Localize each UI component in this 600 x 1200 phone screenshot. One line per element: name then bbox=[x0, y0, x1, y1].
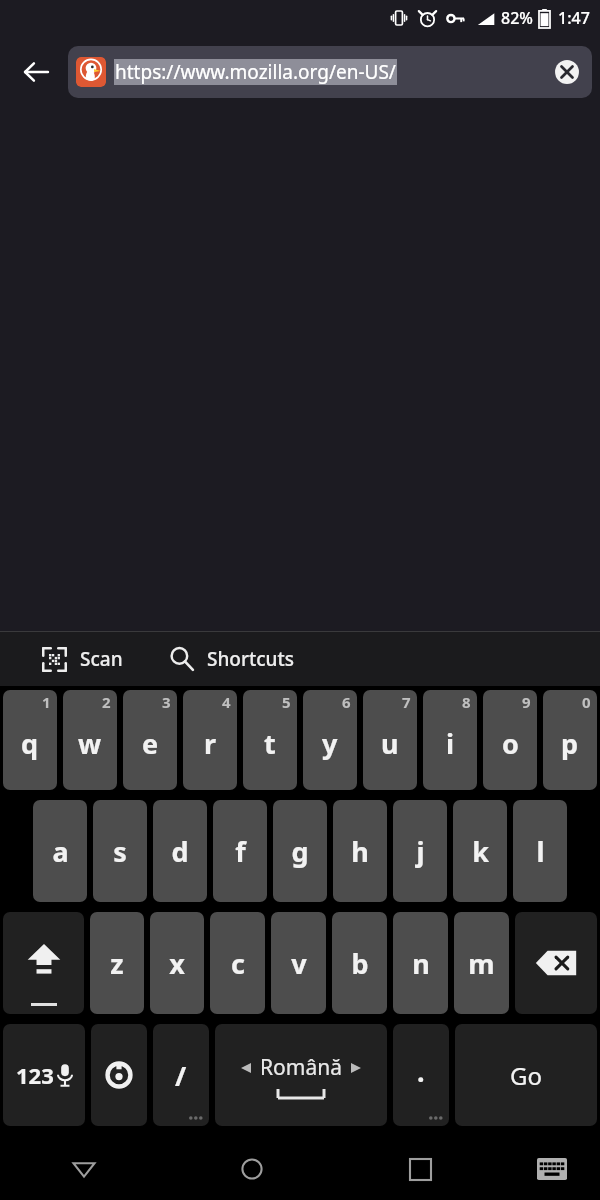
button[interactable]: 3 bbox=[123, 690, 177, 790]
button[interactable]: Back bbox=[8, 44, 64, 100]
staticText: Shortcuts bbox=[207, 646, 295, 672]
button[interactable]: 5 bbox=[243, 690, 297, 790]
button[interactable]: k bbox=[453, 800, 507, 902]
button[interactable]: j bbox=[393, 800, 447, 902]
staticText: n bbox=[412, 945, 430, 982]
staticText: f bbox=[235, 833, 246, 870]
staticText: 8 bbox=[462, 692, 471, 712]
staticText: . bbox=[417, 1053, 425, 1090]
button[interactable]: Shortcuts bbox=[161, 632, 303, 686]
button[interactable]: 1 bbox=[3, 690, 57, 790]
button[interactable]: Home bbox=[168, 1138, 336, 1200]
staticText: 2 bbox=[102, 692, 111, 712]
staticText: v bbox=[291, 945, 307, 982]
button[interactable]: a bbox=[33, 800, 87, 902]
button[interactable]: v bbox=[271, 912, 326, 1014]
button[interactable]: c bbox=[210, 912, 265, 1014]
staticText: h bbox=[351, 833, 369, 870]
staticText: 0 bbox=[582, 692, 591, 712]
staticText: a bbox=[52, 833, 69, 870]
staticText: b bbox=[351, 945, 369, 982]
staticText: w bbox=[78, 725, 102, 762]
button[interactable]: d bbox=[153, 800, 207, 902]
staticText: 3 bbox=[162, 692, 171, 712]
staticText: c bbox=[231, 945, 245, 982]
button[interactable]: 0 bbox=[543, 690, 597, 790]
button[interactable]: n bbox=[393, 912, 448, 1014]
staticText: d bbox=[171, 833, 189, 870]
button[interactable]: Shift bbox=[3, 912, 84, 1014]
staticText: t bbox=[264, 725, 276, 762]
staticText: y bbox=[322, 725, 338, 762]
button[interactable]: Space, Română bbox=[215, 1024, 387, 1126]
button[interactable]: / bbox=[153, 1024, 209, 1126]
button[interactable]: https://www.mozilla.org/en-US/ bbox=[68, 46, 592, 98]
button[interactable]: 9 bbox=[483, 690, 537, 790]
button[interactable]: Numbers and voice input bbox=[3, 1024, 85, 1126]
staticText: 5 bbox=[282, 692, 291, 712]
button[interactable]: Back bbox=[0, 1138, 168, 1200]
button[interactable]: 6 bbox=[303, 690, 357, 790]
button[interactable]: l bbox=[513, 800, 567, 902]
staticText: / bbox=[175, 1057, 187, 1094]
button[interactable]: Scan bbox=[0, 632, 135, 686]
button[interactable]: m bbox=[454, 912, 509, 1014]
staticText: 7 bbox=[402, 692, 411, 712]
staticText: 123 bbox=[16, 1060, 54, 1090]
staticText: Scan bbox=[80, 646, 123, 672]
button[interactable]: x bbox=[150, 912, 204, 1014]
button[interactable]: s bbox=[93, 800, 147, 902]
staticText: s bbox=[113, 833, 127, 870]
staticText: 1 bbox=[42, 692, 51, 712]
staticText: Română bbox=[260, 1053, 342, 1082]
staticText: 82% bbox=[501, 7, 533, 29]
staticText: 1:47 bbox=[558, 7, 590, 29]
button[interactable]: Go bbox=[455, 1024, 597, 1126]
staticText: 9 bbox=[522, 692, 531, 712]
button[interactable]: Clear bbox=[550, 55, 584, 89]
staticText: p bbox=[561, 725, 579, 762]
staticText: Go bbox=[510, 1059, 542, 1092]
button[interactable]: z bbox=[90, 912, 144, 1014]
button[interactable]: Backspace bbox=[515, 912, 597, 1014]
staticText: q bbox=[21, 725, 39, 762]
staticText: e bbox=[142, 725, 159, 762]
staticText: z bbox=[110, 945, 124, 982]
button[interactable]: g bbox=[273, 800, 327, 902]
staticText: k bbox=[472, 833, 489, 870]
staticText: u bbox=[381, 725, 399, 762]
button[interactable]: Recent apps bbox=[336, 1138, 504, 1200]
staticText: 4 bbox=[222, 692, 231, 712]
staticText: i bbox=[446, 725, 455, 762]
staticText: x bbox=[169, 945, 185, 982]
staticText: g bbox=[291, 833, 309, 870]
staticText: https://www.mozilla.org/en-US/ bbox=[115, 59, 396, 85]
button[interactable]: Keyboard settings bbox=[91, 1024, 147, 1126]
staticText: o bbox=[502, 725, 519, 762]
staticText: m bbox=[468, 945, 495, 982]
staticText: 6 bbox=[342, 692, 351, 712]
staticText: j bbox=[416, 833, 425, 870]
button[interactable]: b bbox=[332, 912, 387, 1014]
staticText: r bbox=[204, 725, 217, 762]
button[interactable]: 4 bbox=[183, 690, 237, 790]
button[interactable]: h bbox=[333, 800, 387, 902]
button[interactable]: 8 bbox=[423, 690, 477, 790]
button[interactable]: Hide keyboard bbox=[504, 1138, 600, 1200]
button[interactable]: 7 bbox=[363, 690, 417, 790]
staticText: l bbox=[536, 833, 545, 870]
button[interactable]: . bbox=[393, 1024, 449, 1126]
button[interactable]: f bbox=[213, 800, 267, 902]
button[interactable]: 2 bbox=[63, 690, 117, 790]
